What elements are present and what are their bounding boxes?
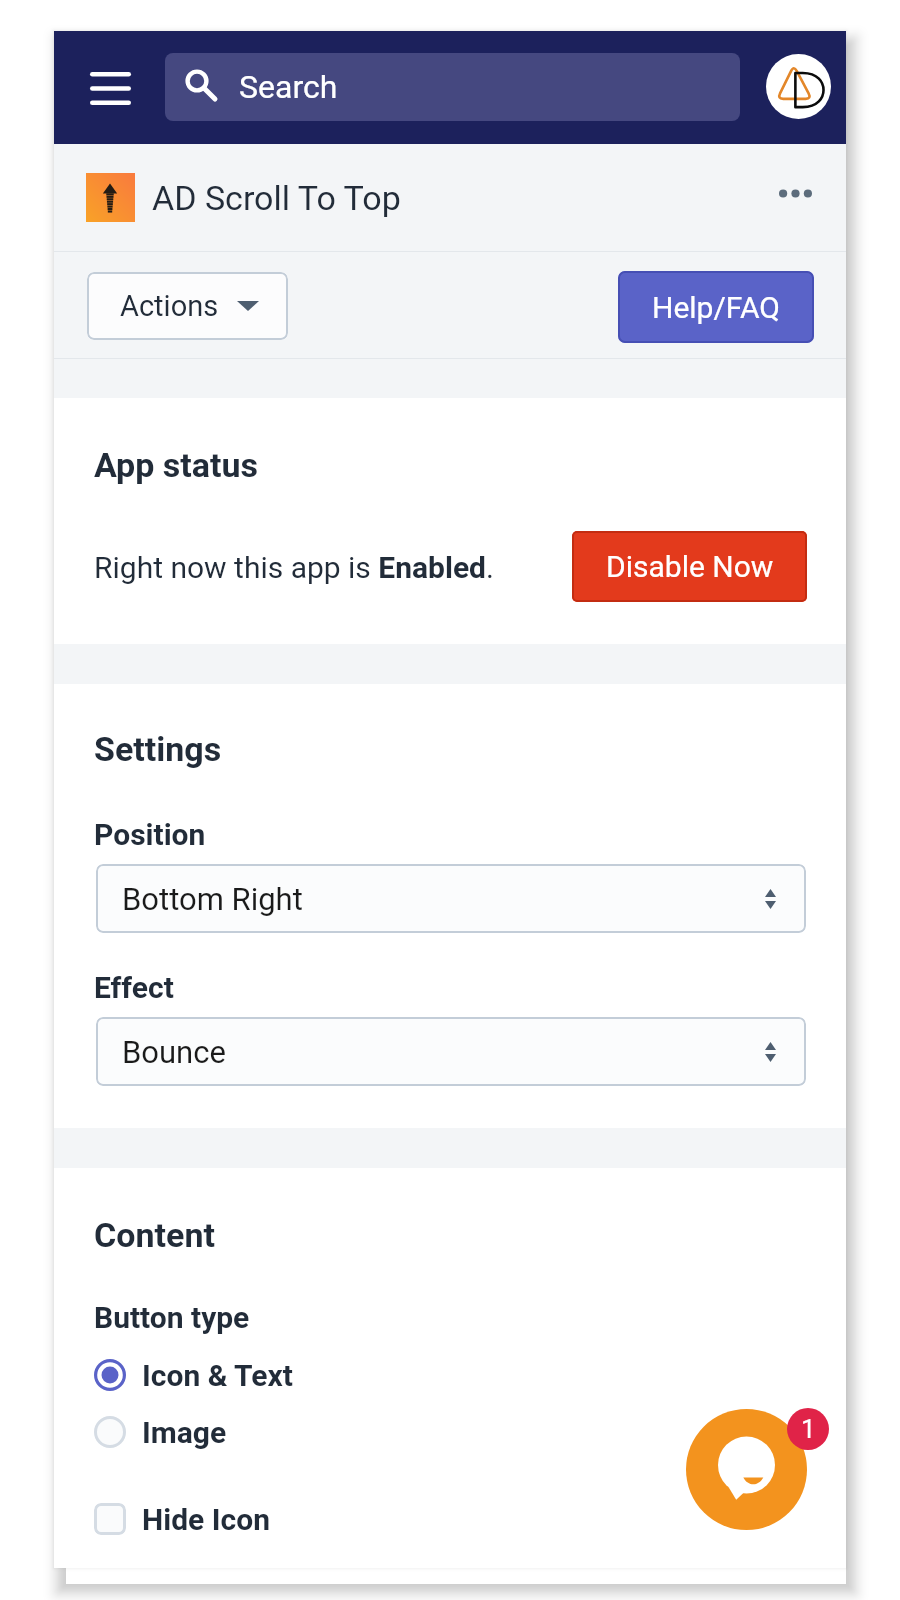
staticText: App status <box>94 445 259 485</box>
staticText: Search <box>239 68 338 106</box>
staticText: Position <box>94 817 206 852</box>
button[interactable]: Account <box>766 54 831 119</box>
staticText: Right now this app is Enabled. <box>94 550 494 585</box>
staticText: Icon & Text <box>142 1358 293 1393</box>
staticText: Hide Icon <box>142 1502 270 1537</box>
staticText: Bottom Right <box>122 881 303 917</box>
other: 1 unread message <box>787 1408 829 1450</box>
button[interactable]: Icon & Text <box>90 1351 293 1399</box>
staticText: Actions <box>120 289 219 323</box>
button[interactable]: Image <box>90 1408 227 1456</box>
button[interactable]: Open navigation menu <box>79 48 141 128</box>
button[interactable]: Bottom Right <box>96 864 806 933</box>
staticText: Disable Now <box>606 549 774 584</box>
button[interactable]: Bounce <box>96 1017 806 1086</box>
button[interactable]: More options <box>767 165 823 221</box>
button[interactable]: Help/FAQ <box>618 271 814 343</box>
staticText: Bounce <box>122 1034 226 1070</box>
button[interactable]: Hide Icon <box>90 1495 270 1543</box>
button[interactable]: Actions <box>87 272 288 340</box>
staticText: Content <box>94 1215 215 1255</box>
staticText: Image <box>142 1415 227 1450</box>
staticText: Effect <box>94 970 174 1005</box>
staticText: Settings <box>94 729 222 769</box>
staticText: Button type <box>94 1300 250 1335</box>
button[interactable]: Search <box>165 53 740 121</box>
staticText: Help/FAQ <box>652 290 780 325</box>
button[interactable]: Open chat <box>686 1409 807 1530</box>
staticText: 1 <box>801 1414 816 1444</box>
staticText: AD Scroll To Top <box>152 178 401 218</box>
button[interactable]: Disable Now <box>572 531 807 602</box>
